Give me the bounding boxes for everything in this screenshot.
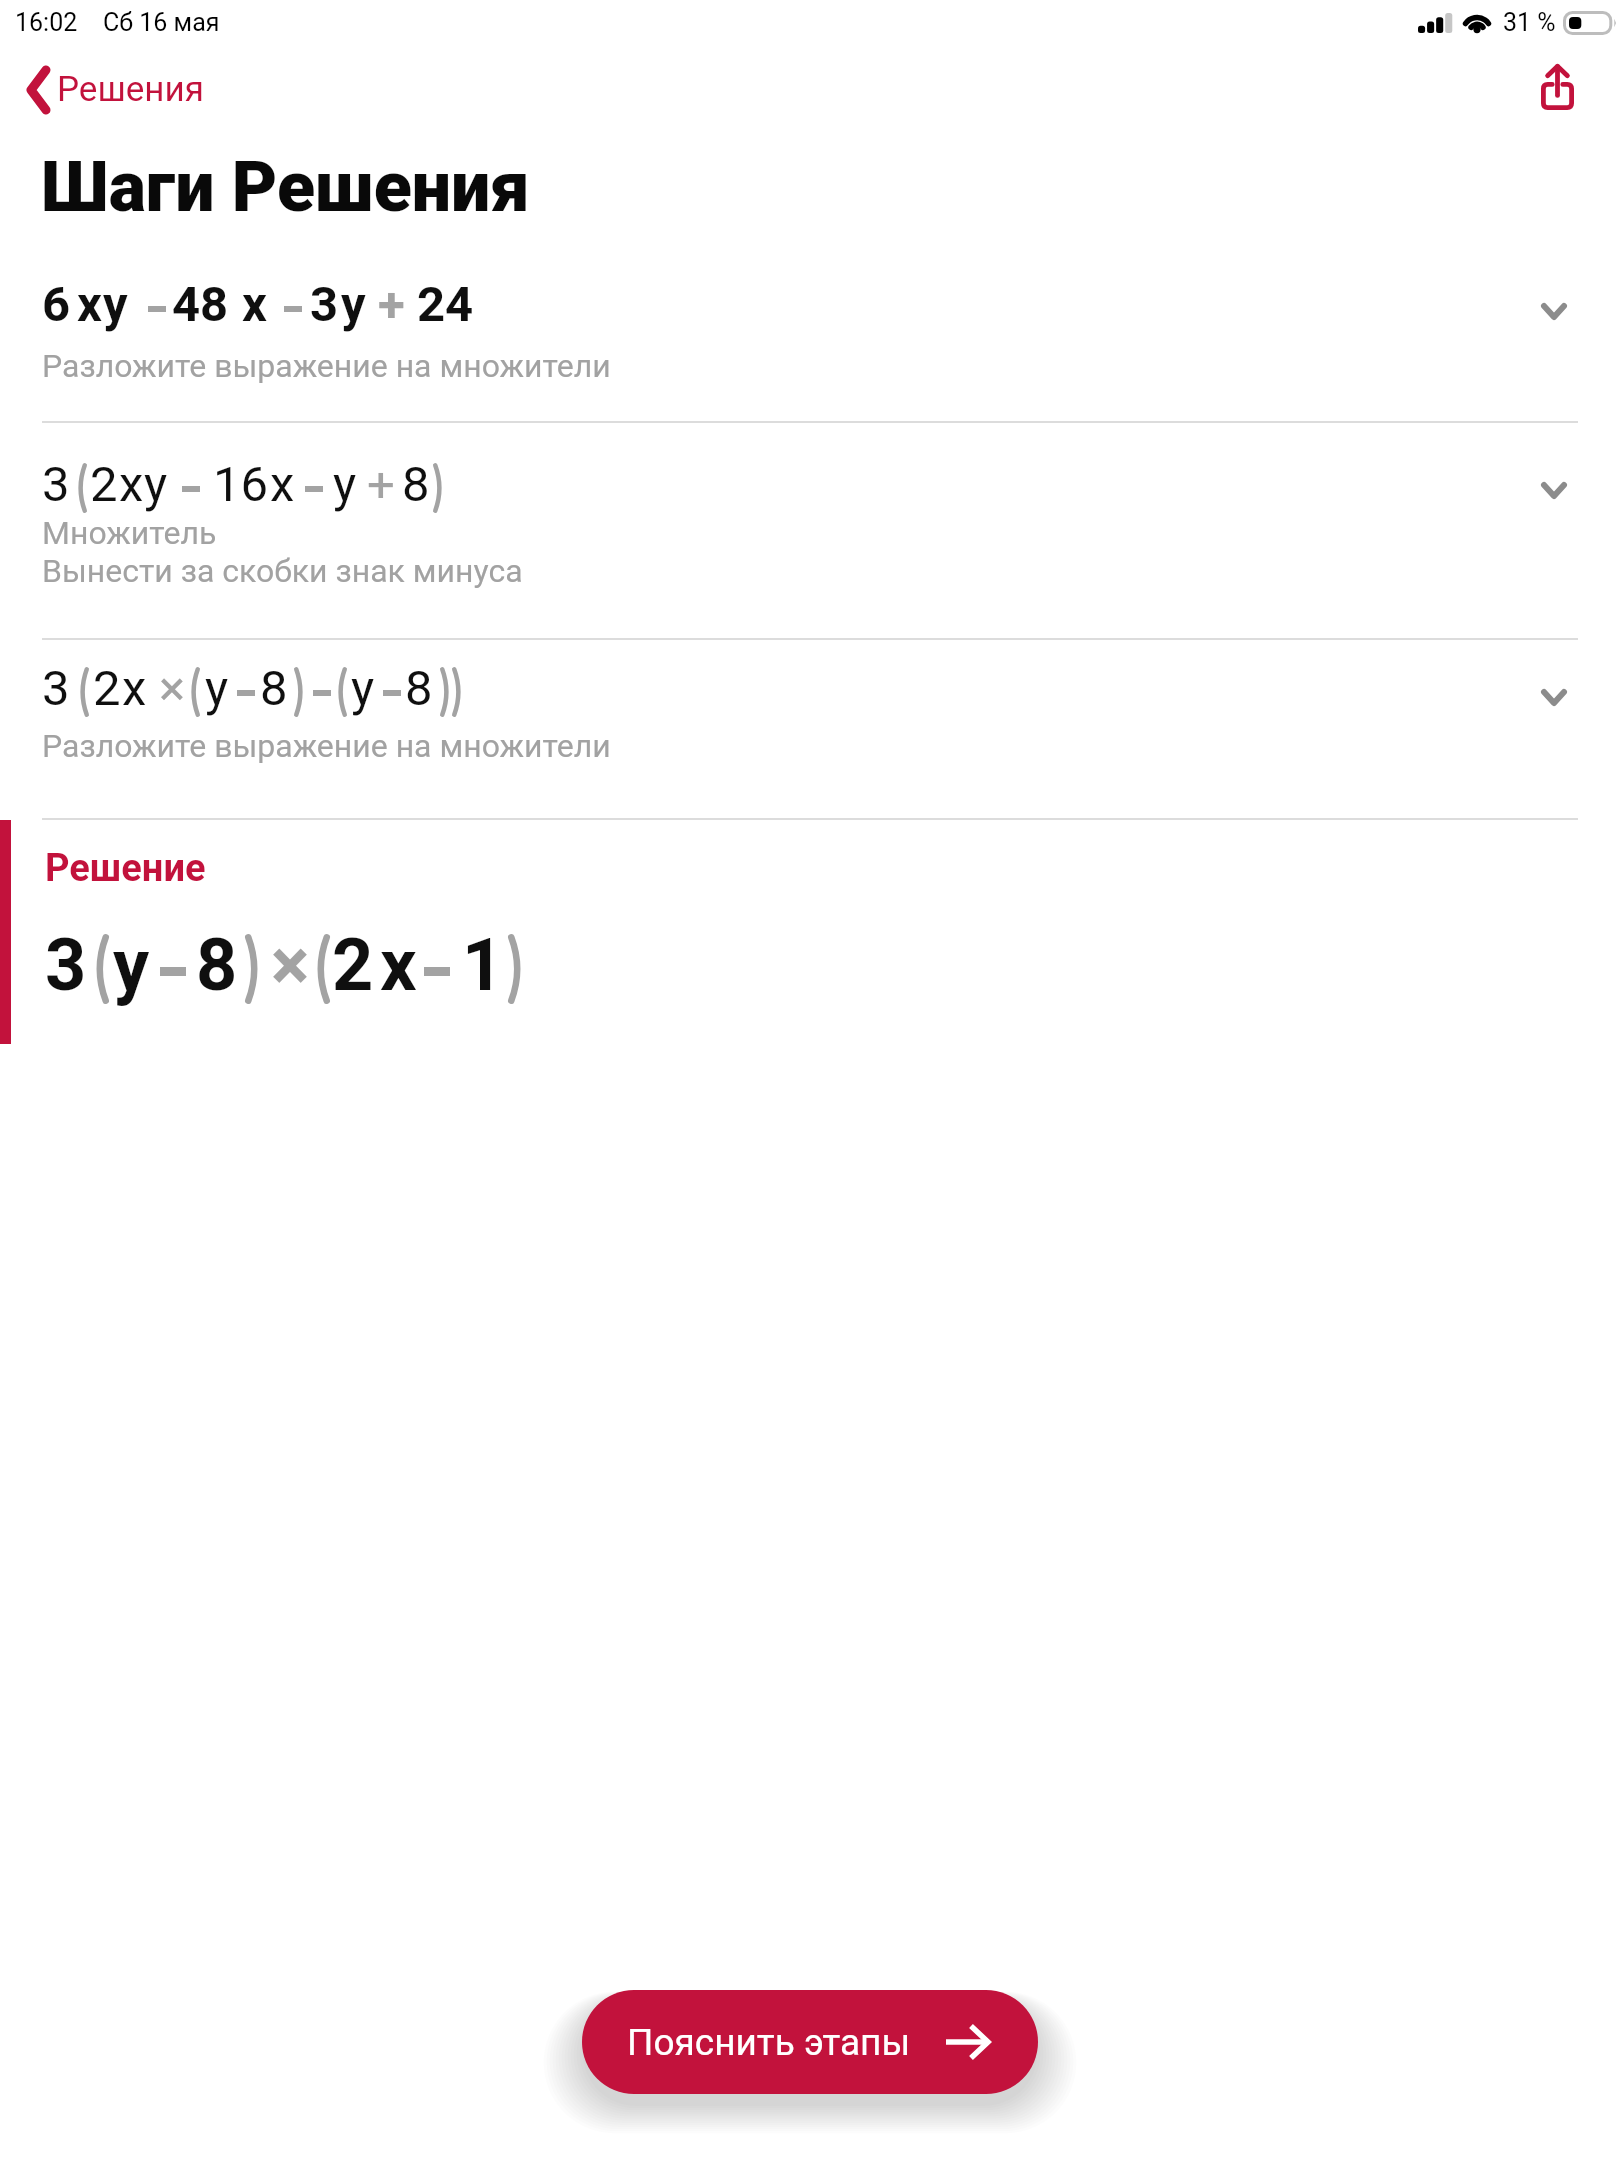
staticText: + <box>378 276 405 333</box>
button[interactable]: 6 <box>0 258 1620 421</box>
staticText: 16:02 <box>15 8 78 37</box>
staticText: Разложите выражение на множители <box>42 727 611 765</box>
staticText: y <box>103 276 128 333</box>
staticText: Вынести за скобки знак минуса <box>42 552 523 590</box>
staticText: 3 <box>310 276 339 333</box>
staticText: 2 <box>332 923 374 1007</box>
staticText: 8 <box>260 660 288 717</box>
staticText: y <box>341 276 366 333</box>
button[interactable]: Share <box>1530 62 1584 116</box>
staticText: Пояснить этапы <box>627 2021 911 2064</box>
staticText: Решение <box>45 846 206 891</box>
button[interactable]: Пояснить этапы <box>582 1990 1038 2094</box>
staticText: + <box>367 456 395 513</box>
staticText: y <box>333 456 357 513</box>
staticText: 2 <box>93 660 121 717</box>
staticText: × <box>159 660 186 717</box>
staticText: 2 <box>90 456 118 513</box>
staticText: Сб 16 мая <box>103 8 220 37</box>
staticText: x <box>380 923 417 1007</box>
staticText: y <box>205 660 229 717</box>
staticText: y <box>144 456 168 513</box>
staticText: 8 <box>196 923 238 1007</box>
staticText: 16 <box>213 456 269 513</box>
staticText: x <box>242 276 267 333</box>
staticText: x <box>77 276 102 333</box>
staticText: 3 <box>42 660 70 717</box>
staticText: Разложите выражение на множители <box>42 347 611 385</box>
staticText: x <box>270 456 295 513</box>
button[interactable]: 3 <box>0 423 1620 638</box>
staticText: y <box>113 923 150 1007</box>
staticText: 48 <box>172 276 229 333</box>
staticText: 31 % <box>1503 8 1556 37</box>
staticText: 6 <box>42 276 71 333</box>
staticText: × <box>271 923 310 1007</box>
staticText: 1 <box>462 923 504 1007</box>
staticText: Шаги Решения <box>41 146 530 228</box>
staticText: Множитель <box>42 514 217 552</box>
staticText: x <box>122 660 147 717</box>
staticText: Решения <box>57 69 204 110</box>
button[interactable]: 3 <box>0 640 1620 818</box>
staticText: y <box>351 660 375 717</box>
button[interactable]: Решения <box>28 63 214 116</box>
staticText: 24 <box>417 276 474 333</box>
staticText: 8 <box>402 456 430 513</box>
staticText: 8 <box>405 660 433 717</box>
staticText: 3 <box>45 923 87 1007</box>
staticText: x <box>119 456 144 513</box>
staticText: 3 <box>42 456 70 513</box>
